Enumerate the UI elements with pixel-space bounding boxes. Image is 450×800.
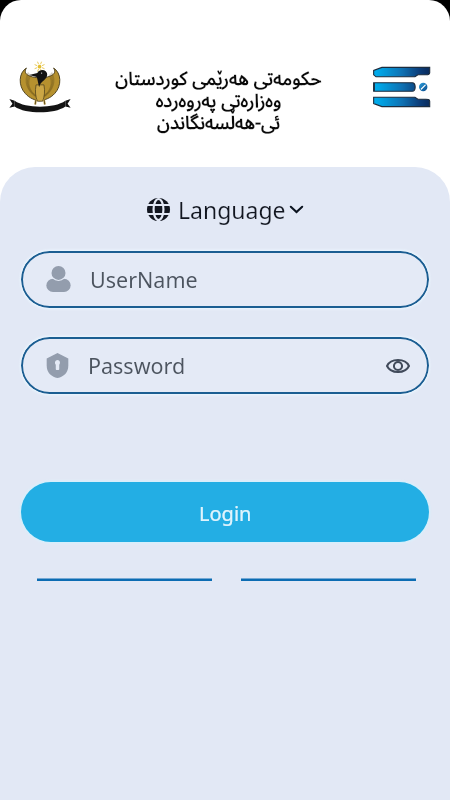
button[interactable]: Language (142, 192, 308, 227)
button[interactable]: Login (21, 482, 429, 542)
button[interactable]: Password (21, 337, 429, 394)
staticText: UserName (90, 265, 198, 294)
button[interactable]: UserName (21, 251, 429, 308)
button[interactable]: Forgot password (37, 567, 212, 581)
staticText: Language (178, 194, 286, 225)
staticText: حکومەتی هەرێمی کوردستان وەزارەتی پەروەرد… (115, 59, 322, 143)
other: Show password (386, 357, 410, 375)
staticText: Password (88, 351, 186, 380)
button[interactable]: Create account (241, 567, 416, 581)
staticText: Login (199, 500, 252, 527)
